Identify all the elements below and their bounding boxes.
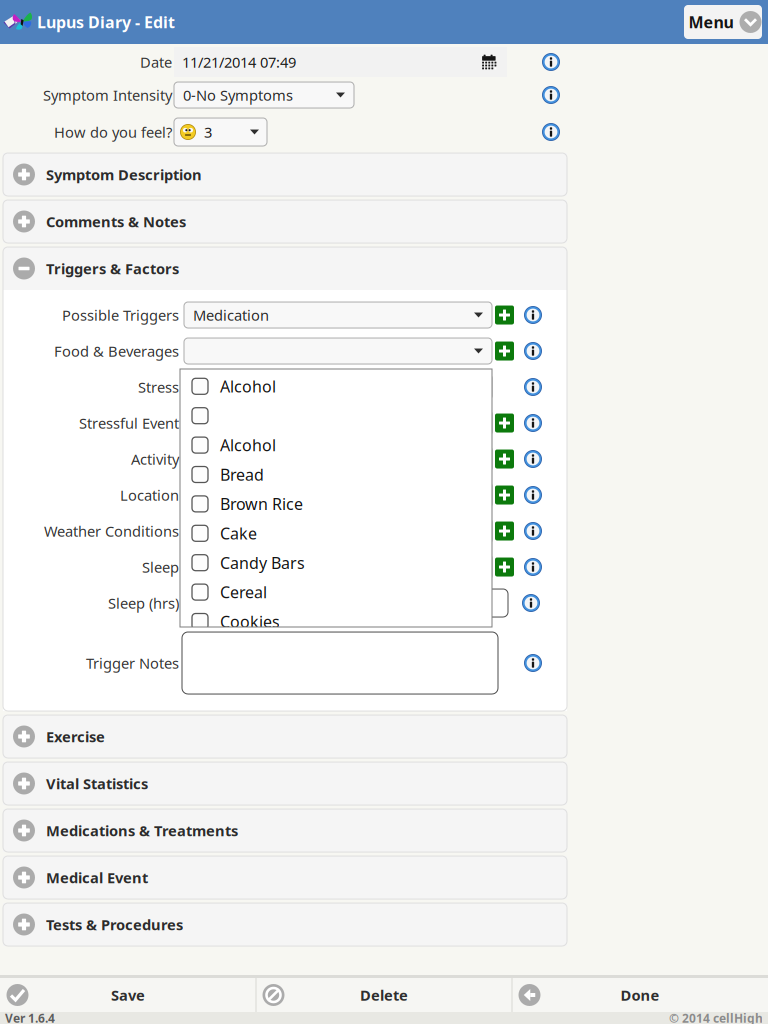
staticText: Medication — [193, 305, 269, 325]
button[interactable]: Menu — [684, 5, 762, 39]
staticText: Sleep (hrs) — [108, 593, 179, 613]
staticText: Cake — [220, 523, 257, 544]
staticText: 11/21/2014 07:49 — [182, 52, 296, 72]
staticText: Cookies — [220, 611, 280, 632]
staticText: Alcohol — [220, 376, 276, 397]
button[interactable]: Alcohol — [180, 430, 492, 460]
button[interactable]: Add Activity — [495, 449, 514, 468]
button[interactable]: Add Location — [495, 485, 514, 504]
button[interactable] — [184, 338, 492, 364]
button[interactable] — [184, 446, 492, 472]
staticText: Sleep — [142, 557, 179, 577]
button[interactable]: Delete — [256, 978, 511, 1012]
staticText: Brown Rice — [220, 493, 303, 514]
staticText: Possible Triggers — [62, 305, 179, 325]
staticText: Lupus Diary - Edit — [37, 11, 175, 33]
button[interactable]: Info about Food & Beverages — [524, 342, 542, 360]
button[interactable]: Bread — [180, 460, 492, 489]
button[interactable]: Medical Event — [3, 856, 567, 899]
staticText: Cereal — [220, 581, 267, 603]
staticText: Save — [111, 985, 145, 1005]
staticText: Symptom Intensity — [43, 85, 172, 105]
button[interactable]: Done — [512, 978, 767, 1012]
button[interactable]: Comments & Notes — [3, 200, 567, 243]
button[interactable] — [184, 374, 492, 400]
button[interactable]: Info about Sleep hours — [522, 594, 540, 612]
button[interactable]: Info about Possible Triggers — [524, 306, 542, 324]
staticText: Weather Conditions — [44, 521, 179, 541]
staticText: Exercise — [46, 727, 105, 746]
button[interactable]: Add Stressful Event — [495, 413, 514, 432]
button[interactable]: Save — [0, 978, 255, 1012]
button[interactable]: Info about Weather Conditions — [524, 522, 542, 540]
button[interactable]: Tests & Procedures — [3, 903, 567, 946]
button[interactable]: Info about How do you feel — [542, 123, 560, 141]
staticText: Medications & Treatments — [46, 821, 238, 840]
button[interactable]: Alcohol — [180, 372, 492, 401]
button[interactable]: Medications & Treatments — [3, 809, 567, 852]
button[interactable]: Info about Activity — [524, 450, 542, 468]
button[interactable] — [184, 410, 492, 436]
staticText: Vital Statistics — [46, 774, 148, 793]
staticText: Food & Beverages — [54, 341, 179, 361]
staticText: Triggers & Factors — [46, 259, 179, 278]
staticText: 3 — [204, 122, 212, 142]
button[interactable]: Medication — [184, 302, 492, 328]
button[interactable]: Info about Location — [524, 486, 542, 504]
button[interactable]: Info about Stress — [524, 378, 542, 396]
button[interactable]: Add Sleep — [495, 557, 514, 576]
staticText: Bread — [220, 464, 264, 485]
button[interactable]: Exercise — [3, 715, 567, 758]
button[interactable]: 0-No Symptoms — [174, 82, 354, 108]
button[interactable]: Candy Bars — [180, 548, 492, 577]
staticText: Done — [620, 985, 659, 1005]
button[interactable]: Triggers & Factors — [3, 247, 567, 290]
staticText: How do you feel? — [54, 122, 172, 142]
button[interactable]: Vital Statistics — [3, 762, 567, 805]
button[interactable]: Add Weather Conditions — [495, 521, 514, 540]
staticText: Comments & Notes — [46, 212, 186, 231]
staticText: Date — [140, 52, 172, 72]
staticText: Stress — [138, 377, 179, 397]
staticText: Trigger Notes — [86, 653, 179, 673]
button[interactable]: Info about Stressful Event — [524, 414, 542, 432]
button[interactable]: Cereal — [180, 577, 492, 607]
staticText: © 2014 cellHigh — [669, 1010, 763, 1024]
button[interactable]: Cookies — [180, 607, 492, 636]
staticText: 0-No Symptoms — [183, 85, 293, 105]
button[interactable]: Info about Date — [542, 53, 560, 71]
button[interactable] — [184, 518, 492, 544]
staticText: Stressful Event — [79, 413, 179, 433]
button[interactable]: Add Possible Triggers — [495, 305, 514, 324]
staticText: Menu — [688, 11, 733, 33]
button[interactable]: Info about Sleep — [524, 558, 542, 576]
staticText: Candy Bars — [220, 552, 305, 573]
button[interactable]: Brown Rice — [180, 489, 492, 519]
button[interactable]: Cake — [180, 519, 492, 548]
button[interactable] — [184, 554, 492, 580]
button[interactable]: Add Food & Beverages — [495, 341, 514, 360]
staticText: Location — [120, 485, 179, 505]
staticText: Medical Event — [46, 868, 148, 887]
staticText: Delete — [360, 985, 408, 1005]
button[interactable]: Info about Trigger Notes — [524, 654, 542, 672]
staticText: Symptom Description — [46, 165, 202, 184]
staticText: Tests & Procedures — [46, 915, 183, 934]
button[interactable] — [184, 482, 492, 508]
staticText: Ver 1.6.4 — [5, 1010, 55, 1024]
button[interactable]: Info about Symptom Intensity — [542, 86, 560, 104]
staticText: Activity — [131, 449, 179, 469]
staticText: Alcohol — [220, 434, 276, 456]
button[interactable]: 3 — [174, 118, 267, 146]
button[interactable]: Symptom Description — [3, 153, 567, 196]
button[interactable] — [180, 401, 492, 430]
